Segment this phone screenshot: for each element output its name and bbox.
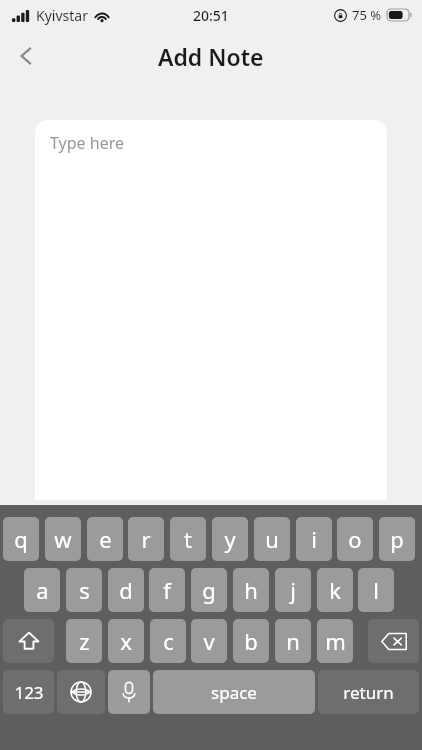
staticText: m	[325, 626, 346, 656]
button[interactable]: c	[150, 619, 186, 663]
button[interactable]: Type here	[35, 120, 387, 500]
button[interactable]: s	[66, 568, 102, 612]
button[interactable]: q	[3, 517, 39, 561]
staticText: t	[184, 524, 192, 554]
staticText: e	[99, 524, 112, 554]
button[interactable]: f	[149, 568, 185, 612]
button[interactable]: p	[379, 517, 415, 561]
button[interactable]: e	[87, 517, 123, 561]
staticText: h	[244, 575, 258, 605]
other: Dictation	[121, 681, 137, 703]
staticText: f	[163, 575, 171, 605]
staticText: z	[79, 626, 90, 656]
button[interactable]: x	[108, 619, 144, 663]
staticText: 123	[14, 681, 44, 704]
staticText: u	[265, 524, 279, 554]
staticText: x	[120, 626, 132, 656]
staticText: space	[211, 681, 257, 704]
button[interactable]: 123	[3, 670, 54, 714]
other: Change keyboard language	[70, 681, 92, 703]
button[interactable]: return	[318, 670, 419, 714]
button[interactable]: Dictation	[108, 670, 150, 714]
other: Backspace	[381, 632, 407, 651]
staticText: d	[119, 575, 133, 605]
staticText: p	[390, 524, 404, 554]
button[interactable]: g	[191, 568, 227, 612]
staticText: j	[290, 575, 296, 605]
staticText: k	[329, 575, 341, 605]
button[interactable]: z	[66, 619, 102, 663]
staticText: b	[244, 626, 258, 656]
button[interactable]: k	[317, 568, 353, 612]
staticText: y	[224, 524, 236, 554]
button[interactable]: i	[296, 517, 332, 561]
staticText: i	[311, 524, 317, 554]
button[interactable]: Back	[4, 34, 48, 78]
button[interactable]: d	[108, 568, 144, 612]
staticText: o	[348, 524, 362, 554]
button[interactable]: l	[358, 568, 394, 612]
button[interactable]: t	[170, 517, 206, 561]
staticText: 20:51	[193, 6, 229, 25]
staticText: s	[79, 575, 90, 605]
button[interactable]: v	[191, 619, 227, 663]
staticText: c	[163, 626, 174, 656]
button[interactable]: r	[128, 517, 164, 561]
button[interactable]: m	[317, 619, 353, 663]
staticText: Kyivstar	[36, 6, 88, 25]
button[interactable]: Change keyboard language	[57, 670, 105, 714]
staticText: return	[343, 681, 394, 704]
button[interactable]: j	[275, 568, 311, 612]
button[interactable]: y	[212, 517, 248, 561]
staticText: l	[373, 575, 379, 605]
button[interactable]: h	[233, 568, 269, 612]
button[interactable]: o	[337, 517, 373, 561]
staticText: v	[203, 626, 215, 656]
staticText: g	[202, 575, 216, 605]
staticText: q	[14, 524, 28, 554]
button[interactable]: b	[233, 619, 269, 663]
button[interactable]: a	[24, 568, 60, 612]
button[interactable]: u	[254, 517, 290, 561]
staticText: r	[141, 524, 151, 554]
other: Shift	[18, 630, 40, 652]
button[interactable]: w	[45, 517, 81, 561]
button[interactable]: Backspace	[368, 619, 419, 663]
button[interactable]: n	[275, 619, 311, 663]
staticText: w	[54, 524, 72, 554]
staticText: Add Note	[158, 41, 264, 72]
staticText: n	[286, 626, 300, 656]
staticText: a	[36, 575, 49, 605]
button[interactable]: space	[153, 670, 315, 714]
staticText: Type here	[50, 132, 124, 154]
staticText: 75 %	[352, 6, 382, 24]
button[interactable]: Shift	[3, 619, 54, 663]
